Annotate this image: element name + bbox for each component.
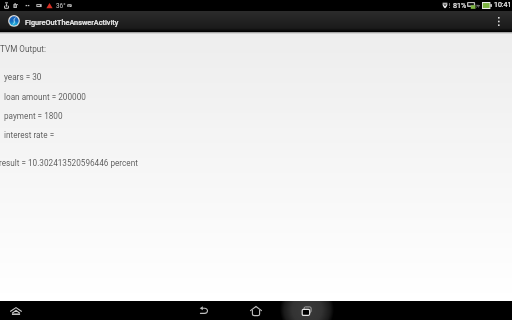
staticText: 36° xyxy=(56,2,66,10)
staticText: years = 30 xyxy=(4,72,42,82)
staticText: FigureOutTheAnswerActivity xyxy=(25,18,119,27)
button[interactable]: More options xyxy=(490,11,508,32)
staticText: TVM Output: xyxy=(0,44,46,54)
staticText: result = 10.302413520596446 percent xyxy=(0,158,138,168)
staticText: 81% xyxy=(453,1,467,9)
button[interactable]: Show keyboard xyxy=(0,301,32,320)
button[interactable]: Back xyxy=(186,301,220,320)
button[interactable]: Home xyxy=(239,301,273,320)
staticText: payment = 1800 xyxy=(4,111,63,121)
staticText: loan amount = 200000 xyxy=(4,92,86,102)
staticText: interest rate = xyxy=(4,130,57,140)
button[interactable]: Recent apps xyxy=(290,301,324,320)
staticText: 10:41 xyxy=(494,1,512,9)
